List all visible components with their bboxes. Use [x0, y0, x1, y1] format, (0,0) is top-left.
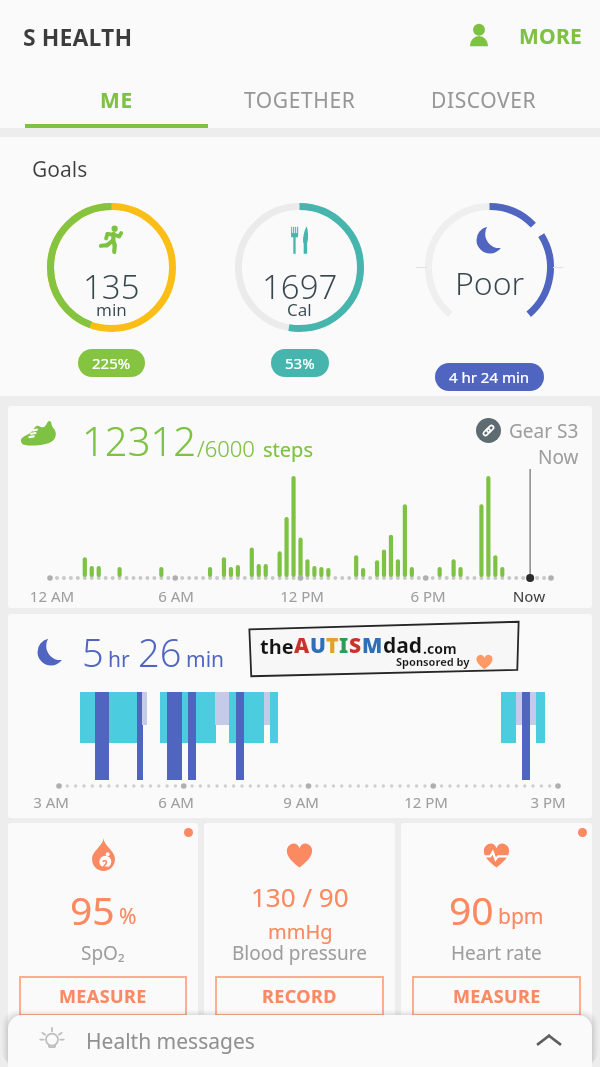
button[interactable]: Profile: [455, 12, 503, 60]
button[interactable]: 12312: [8, 406, 592, 608]
staticText: Blood pressure: [232, 940, 367, 966]
staticText: 12 PM: [272, 586, 332, 606]
staticText: 1697: [262, 264, 338, 309]
staticText: 53%: [285, 353, 315, 373]
staticText: ME: [100, 86, 133, 115]
staticText: min: [186, 645, 225, 674]
button[interactable]: 5: [8, 614, 592, 818]
staticText: 6 AM: [146, 586, 206, 606]
button[interactable]: 130 / 90: [204, 823, 395, 1035]
staticText: DISCOVER: [431, 86, 537, 115]
staticText: 135: [83, 264, 140, 309]
staticText: dad: [383, 631, 423, 660]
button[interactable]: RECORD: [215, 976, 384, 1016]
button[interactable]: 4 hr 24 min: [435, 363, 544, 391]
staticText: 225%: [92, 353, 131, 373]
staticText: 26: [138, 626, 182, 678]
staticText: the: [260, 633, 294, 660]
staticText: 3 AM: [21, 792, 81, 812]
staticText: 3 PM: [518, 792, 578, 812]
staticText: I: [339, 631, 349, 660]
staticText: 2: [102, 857, 108, 871]
staticText: Heart rate: [451, 940, 542, 966]
staticText: /6000: [197, 433, 255, 463]
staticText: min: [96, 298, 127, 321]
staticText: hr: [108, 645, 130, 674]
staticText: U: [310, 631, 326, 660]
staticText: S HEALTH: [23, 21, 133, 52]
button[interactable]: 225%: [78, 349, 145, 377]
button[interactable]: TOGETHER: [208, 72, 392, 128]
staticText: %: [119, 902, 137, 931]
staticText: Gear S3: [509, 418, 579, 444]
staticText: TOGETHER: [244, 86, 356, 115]
staticText: MEASURE: [453, 984, 541, 1009]
staticText: Sponsored by: [396, 654, 470, 669]
button[interactable]: 2: [8, 823, 198, 1035]
button[interactable]: 90: [401, 823, 592, 1035]
button[interactable]: 1697: [235, 203, 364, 377]
staticText: mmHg: [268, 918, 333, 945]
button[interactable]: DISCOVER: [392, 72, 576, 128]
staticText: 95: [70, 883, 115, 936]
staticText: A: [294, 631, 310, 660]
staticText: 6 AM: [146, 792, 206, 812]
button[interactable]: ME: [25, 72, 208, 128]
staticText: 12 PM: [396, 792, 456, 812]
staticText: 12312: [82, 413, 197, 467]
staticText: 4 hr 24 min: [449, 367, 530, 387]
staticText: 5: [82, 626, 104, 678]
button[interactable]: Health messages: [8, 1015, 592, 1067]
staticText: 6 PM: [398, 586, 458, 606]
staticText: 90: [449, 883, 494, 936]
staticText: Cal: [287, 298, 312, 321]
staticText: RECORD: [262, 984, 337, 1009]
button[interactable]: 53%: [271, 349, 329, 377]
button[interactable]: 135: [47, 203, 176, 377]
button[interactable]: Poor: [425, 203, 554, 391]
staticText: MORE: [519, 22, 583, 51]
other: Expand: [532, 1024, 566, 1058]
button[interactable]: MEASURE: [412, 976, 581, 1016]
staticText: Now: [499, 586, 559, 606]
staticText: S: [349, 631, 362, 660]
staticText: MEASURE: [59, 984, 147, 1009]
button[interactable]: MORE: [509, 10, 593, 63]
staticText: 9 AM: [271, 792, 331, 812]
button[interactable]: MEASURE: [19, 976, 187, 1016]
staticText: 130 / 90: [251, 879, 349, 914]
staticText: T: [326, 631, 339, 660]
staticText: .com: [423, 639, 457, 658]
staticText: bpm: [498, 902, 544, 931]
staticText: M: [362, 631, 383, 660]
staticText: steps: [263, 436, 313, 463]
staticText: Poor: [455, 261, 525, 305]
staticText: Goals: [32, 155, 88, 184]
staticText: Health messages: [86, 1027, 255, 1056]
staticText: Now: [538, 444, 579, 470]
staticText: 12 AM: [22, 586, 82, 606]
staticText: SpO₂: [81, 940, 125, 966]
